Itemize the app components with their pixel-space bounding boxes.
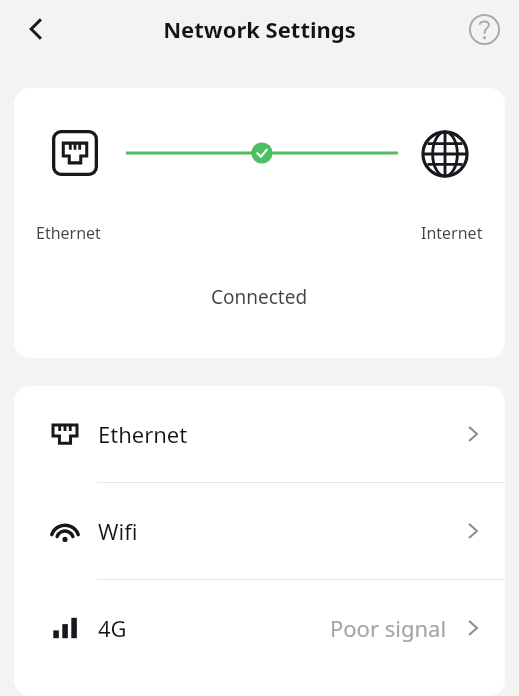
staticText: 4G (98, 613, 127, 643)
button[interactable]: Help (462, 7, 506, 51)
button[interactable]: Ethernet (14, 386, 505, 482)
button[interactable]: Wifi (14, 483, 505, 579)
staticText: Ethernet (98, 419, 188, 449)
staticText: Network Settings (163, 14, 356, 44)
button[interactable]: Back (12, 5, 60, 53)
staticText: Poor signal (330, 613, 447, 643)
button[interactable]: 4G (14, 580, 505, 676)
staticText: Connected (211, 284, 308, 310)
staticText: Wifi (98, 516, 138, 546)
staticText: Internet (421, 222, 483, 244)
staticText: Ethernet (36, 222, 101, 244)
